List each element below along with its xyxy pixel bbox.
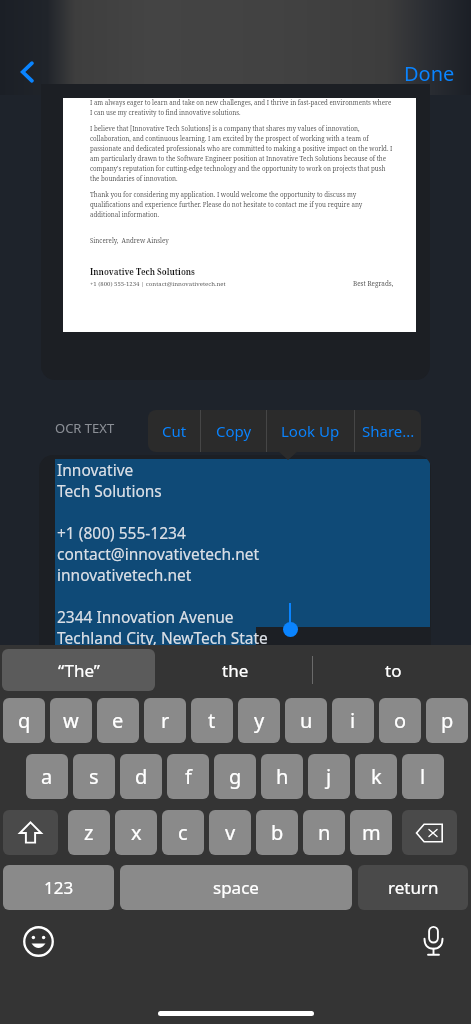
button[interactable]: v: [209, 810, 251, 855]
staticText: b: [271, 819, 284, 846]
staticText: i: [350, 707, 356, 734]
staticText: e: [112, 707, 124, 734]
button[interactable]: b: [256, 810, 298, 855]
staticText: l: [420, 763, 426, 790]
staticText: Cut: [162, 421, 187, 441]
button[interactable]: y: [238, 698, 280, 743]
staticText: f: [185, 763, 192, 790]
staticText: a: [41, 763, 53, 790]
button[interactable]: Look Up: [267, 410, 354, 452]
button[interactable]: Cut: [148, 410, 200, 452]
staticText: to: [385, 659, 402, 682]
button[interactable]: Copy: [201, 410, 266, 452]
staticText: Innovative: [57, 459, 134, 480]
button[interactable]: Done: [404, 56, 466, 90]
button[interactable]: g: [214, 754, 256, 799]
button[interactable]: Back: [8, 52, 48, 92]
staticText: Best Regrads,: [353, 279, 394, 288]
button[interactable]: m: [350, 810, 392, 855]
staticText: x: [131, 819, 142, 846]
button[interactable]: Backspace: [402, 810, 457, 855]
button[interactable]: p: [426, 698, 468, 743]
button[interactable]: i: [332, 698, 374, 743]
staticText: r: [161, 707, 170, 734]
button[interactable]: Emoji keyboard: [19, 922, 57, 960]
staticText: 2344 Innovation Avenue: [57, 606, 234, 627]
button[interactable]: I am always eager to learn and take on n…: [41, 84, 430, 380]
button[interactable]: h: [261, 754, 303, 799]
staticText: space: [213, 876, 259, 899]
staticText: innovativetech.net: [57, 564, 192, 585]
button[interactable]: c: [162, 810, 204, 855]
button[interactable]: z: [68, 810, 110, 855]
button[interactable]: t: [191, 698, 233, 743]
staticText: Sincerely, Andrew Ainsley: [90, 236, 169, 244]
button[interactable]: to: [318, 645, 468, 695]
button[interactable]: Innovative: [39, 455, 431, 645]
staticText: the: [222, 659, 249, 682]
button[interactable]: o: [379, 698, 421, 743]
staticText: o: [394, 707, 407, 734]
staticText: q: [18, 707, 31, 734]
button[interactable]: u: [285, 698, 327, 743]
button[interactable]: n: [303, 810, 345, 855]
staticText: j: [326, 763, 332, 790]
button[interactable]: r: [144, 698, 186, 743]
button[interactable]: Share...: [355, 410, 421, 452]
button[interactable]: k: [355, 754, 397, 799]
button[interactable]: the: [160, 645, 310, 695]
staticText: c: [178, 819, 188, 846]
staticText: n: [318, 819, 331, 846]
staticText: “The”: [58, 659, 100, 682]
staticText: g: [229, 763, 242, 790]
staticText: Done: [404, 60, 455, 87]
staticText: Innovative Tech Solutions: [90, 266, 195, 277]
staticText: s: [89, 763, 99, 790]
staticText: t: [208, 707, 216, 734]
staticText: Techland City, NewTech State: [57, 627, 268, 645]
button[interactable]: x: [115, 810, 157, 855]
staticText: Tech Solutions: [57, 480, 162, 501]
staticText: return: [388, 876, 439, 899]
button[interactable]: l: [402, 754, 444, 799]
button[interactable]: Shift: [3, 810, 58, 855]
staticText: OCR TEXT: [55, 419, 115, 437]
button[interactable]: Dictation: [414, 922, 452, 960]
staticText: I believe that [Innovative Tech Solution…: [90, 124, 394, 183]
staticText: +1 (800) 555-1234: [57, 522, 186, 543]
button[interactable]: return: [358, 865, 468, 910]
button[interactable]: space: [120, 865, 352, 910]
button[interactable]: q: [3, 698, 45, 743]
staticText: contact@innovativetech.net: [57, 543, 260, 564]
staticText: y: [254, 707, 265, 734]
staticText: Thank you for considering my application…: [90, 190, 394, 219]
button[interactable]: a: [26, 754, 68, 799]
button[interactable]: w: [50, 698, 92, 743]
button[interactable]: d: [120, 754, 162, 799]
staticText: v: [225, 819, 236, 846]
button[interactable]: j: [308, 754, 350, 799]
staticText: u: [300, 707, 313, 734]
staticText: d: [135, 763, 148, 790]
staticText: +1 (800) 555-1234 | contact@innovativete…: [90, 280, 226, 288]
staticText: I am always eager to learn and take on n…: [90, 98, 394, 117]
button[interactable]: 123: [3, 865, 114, 910]
button[interactable]: f: [167, 754, 209, 799]
staticText: 123: [44, 876, 74, 899]
staticText: Share...: [362, 421, 415, 441]
staticText: h: [276, 763, 289, 790]
staticText: p: [441, 707, 454, 734]
staticText: w: [63, 707, 79, 734]
staticText: Copy: [216, 421, 252, 441]
button[interactable]: s: [73, 754, 115, 799]
button[interactable]: e: [97, 698, 139, 743]
button[interactable]: “The”: [2, 649, 155, 691]
staticText: Look Up: [281, 421, 340, 441]
staticText: m: [362, 819, 381, 846]
staticText: z: [84, 819, 94, 846]
staticText: k: [371, 763, 382, 790]
